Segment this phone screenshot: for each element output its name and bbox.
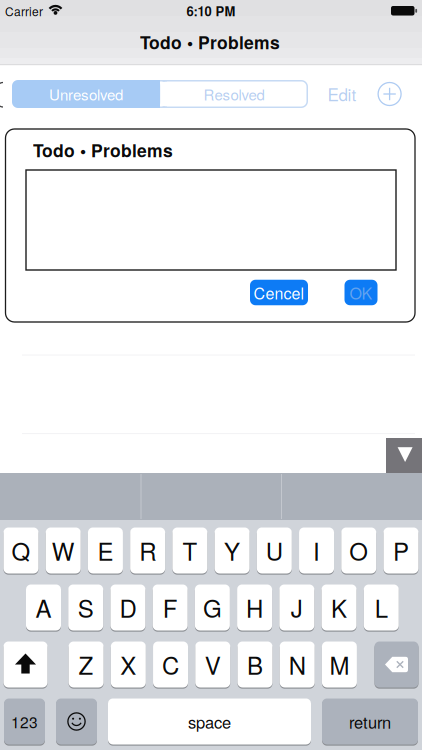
staticText: 6:10 PM [186, 2, 235, 20]
button[interactable]: K [321, 584, 356, 630]
button[interactable]: F [153, 584, 188, 630]
button[interactable]: B [237, 641, 272, 687]
button[interactable]: Cencel [250, 280, 308, 305]
staticText: I [313, 533, 320, 568]
staticText: R [139, 533, 156, 568]
button[interactable]: C [153, 641, 188, 687]
button[interactable]: S [68, 584, 103, 630]
button[interactable]: D [110, 584, 145, 630]
staticText: 123 [11, 710, 38, 733]
staticText: Carrier [5, 2, 43, 20]
staticText: M [329, 647, 349, 682]
button[interactable]: J [279, 584, 314, 630]
button[interactable]: P [383, 527, 418, 573]
button[interactable]: Add [375, 79, 405, 109]
button[interactable]: M [322, 641, 357, 687]
button[interactable]: Y [215, 527, 250, 573]
button[interactable]: Unresolved [12, 80, 160, 108]
staticText: T [182, 533, 197, 568]
staticText: N [289, 647, 306, 682]
button[interactable]: space [108, 698, 311, 744]
staticText: S [78, 590, 94, 625]
staticText: Z [79, 647, 94, 682]
button[interactable]: Q [3, 527, 38, 573]
staticText: Q [11, 533, 30, 568]
staticText: A [35, 590, 51, 625]
button[interactable]: W [46, 527, 81, 573]
button[interactable]: Dismiss Keyboard [386, 438, 422, 473]
staticText: D [119, 590, 136, 625]
staticText: L [375, 590, 388, 625]
staticText: B [247, 647, 263, 682]
button[interactable]: E [88, 527, 123, 573]
button[interactable]: Delete [374, 641, 418, 687]
button[interactable]: V [195, 641, 230, 687]
button[interactable]: Resolved [160, 80, 308, 108]
button[interactable]: Shift [3, 641, 47, 687]
staticText: space [188, 710, 231, 733]
staticText: return [349, 710, 391, 733]
button[interactable]: OK [344, 280, 377, 305]
button[interactable]: Edit [319, 79, 365, 109]
staticText: G [203, 590, 222, 625]
button[interactable]: H [237, 584, 272, 630]
staticText: Todo • Problems [33, 137, 173, 163]
button[interactable]: Z [69, 641, 104, 687]
staticText: F [163, 590, 178, 625]
button[interactable]: R [130, 527, 165, 573]
staticText: E [97, 533, 113, 568]
button[interactable]: L [364, 584, 399, 630]
staticText: Cencel [253, 281, 304, 304]
staticText: K [331, 590, 347, 625]
staticText: Resolved [203, 83, 264, 105]
staticText: O [349, 533, 368, 568]
button[interactable]: return [322, 698, 418, 744]
staticText: V [205, 647, 221, 682]
staticText: X [120, 647, 136, 682]
staticText: Y [224, 533, 240, 568]
button[interactable]: X [111, 641, 146, 687]
staticText: C [162, 647, 179, 682]
staticText: H [246, 590, 263, 625]
button[interactable]: N [280, 641, 315, 687]
staticText: OK [349, 281, 372, 304]
button[interactable]: Emoji [56, 698, 97, 744]
button[interactable]: A [26, 584, 61, 630]
staticText: P [393, 533, 409, 568]
staticText: Edit [327, 82, 356, 106]
button[interactable]: I [299, 527, 334, 573]
staticText: Todo • Problems [140, 29, 280, 55]
button[interactable]: G [195, 584, 230, 630]
staticText: W [52, 533, 75, 568]
button[interactable]: 123 [4, 698, 45, 744]
staticText: U [266, 533, 283, 568]
button[interactable]: T [172, 527, 207, 573]
staticText: Unresolved [49, 83, 123, 105]
button[interactable]: U [257, 527, 292, 573]
staticText: J [291, 590, 303, 625]
button[interactable]: O [341, 527, 376, 573]
